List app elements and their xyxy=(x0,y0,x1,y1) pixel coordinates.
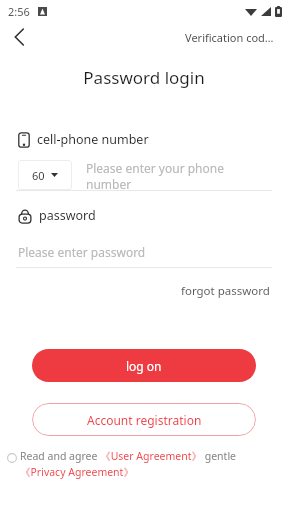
staticText: 2:56 xyxy=(8,4,30,19)
button[interactable]: Please enter your phone number xyxy=(86,160,270,190)
button[interactable]: log on xyxy=(32,349,256,382)
button[interactable]: Agree to terms xyxy=(6,452,18,464)
staticText: password xyxy=(39,207,96,224)
button[interactable]: Account registration xyxy=(32,403,256,436)
staticText: log on xyxy=(126,358,162,374)
staticText: Account registration xyxy=(87,412,202,428)
staticText: Verification cod… xyxy=(185,30,274,45)
button[interactable]: Back xyxy=(6,24,32,50)
staticText: 60 xyxy=(32,168,45,183)
staticText: Please enter your phone number xyxy=(86,160,270,190)
button[interactable]: 60 xyxy=(18,160,72,190)
button[interactable]: forgot password xyxy=(179,280,272,302)
staticText: cell-phone number xyxy=(37,131,149,148)
staticText: Password login xyxy=(0,66,288,89)
button[interactable]: Verification cod… xyxy=(185,30,274,45)
staticText: Please enter password xyxy=(18,244,146,260)
staticText: forgot password xyxy=(181,283,270,299)
button[interactable]: Please enter password xyxy=(18,242,270,262)
button[interactable]: Read and agree 《User Agreement》 gentle 《… xyxy=(20,449,280,479)
